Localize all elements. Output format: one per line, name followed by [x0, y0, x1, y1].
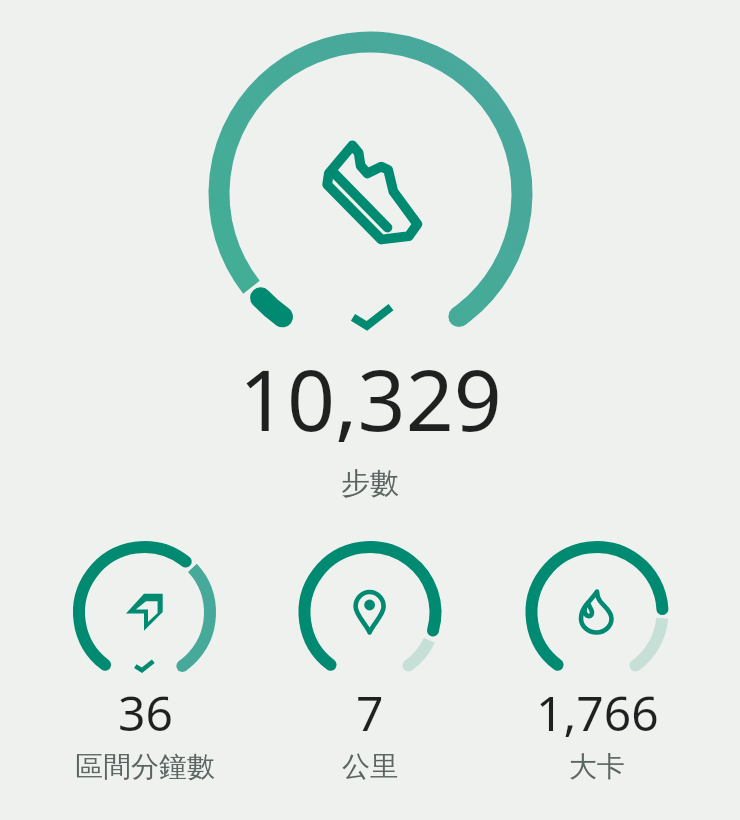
staticText: 7: [356, 680, 384, 745]
staticText: 區間分鐘數: [75, 749, 215, 784]
staticText: 36: [118, 680, 173, 745]
staticText: 大卡: [569, 749, 625, 784]
staticText: 公里: [342, 749, 398, 784]
staticText: 1,766: [536, 680, 659, 745]
staticText: 10,329: [239, 341, 502, 455]
staticText: 步數: [341, 465, 399, 502]
